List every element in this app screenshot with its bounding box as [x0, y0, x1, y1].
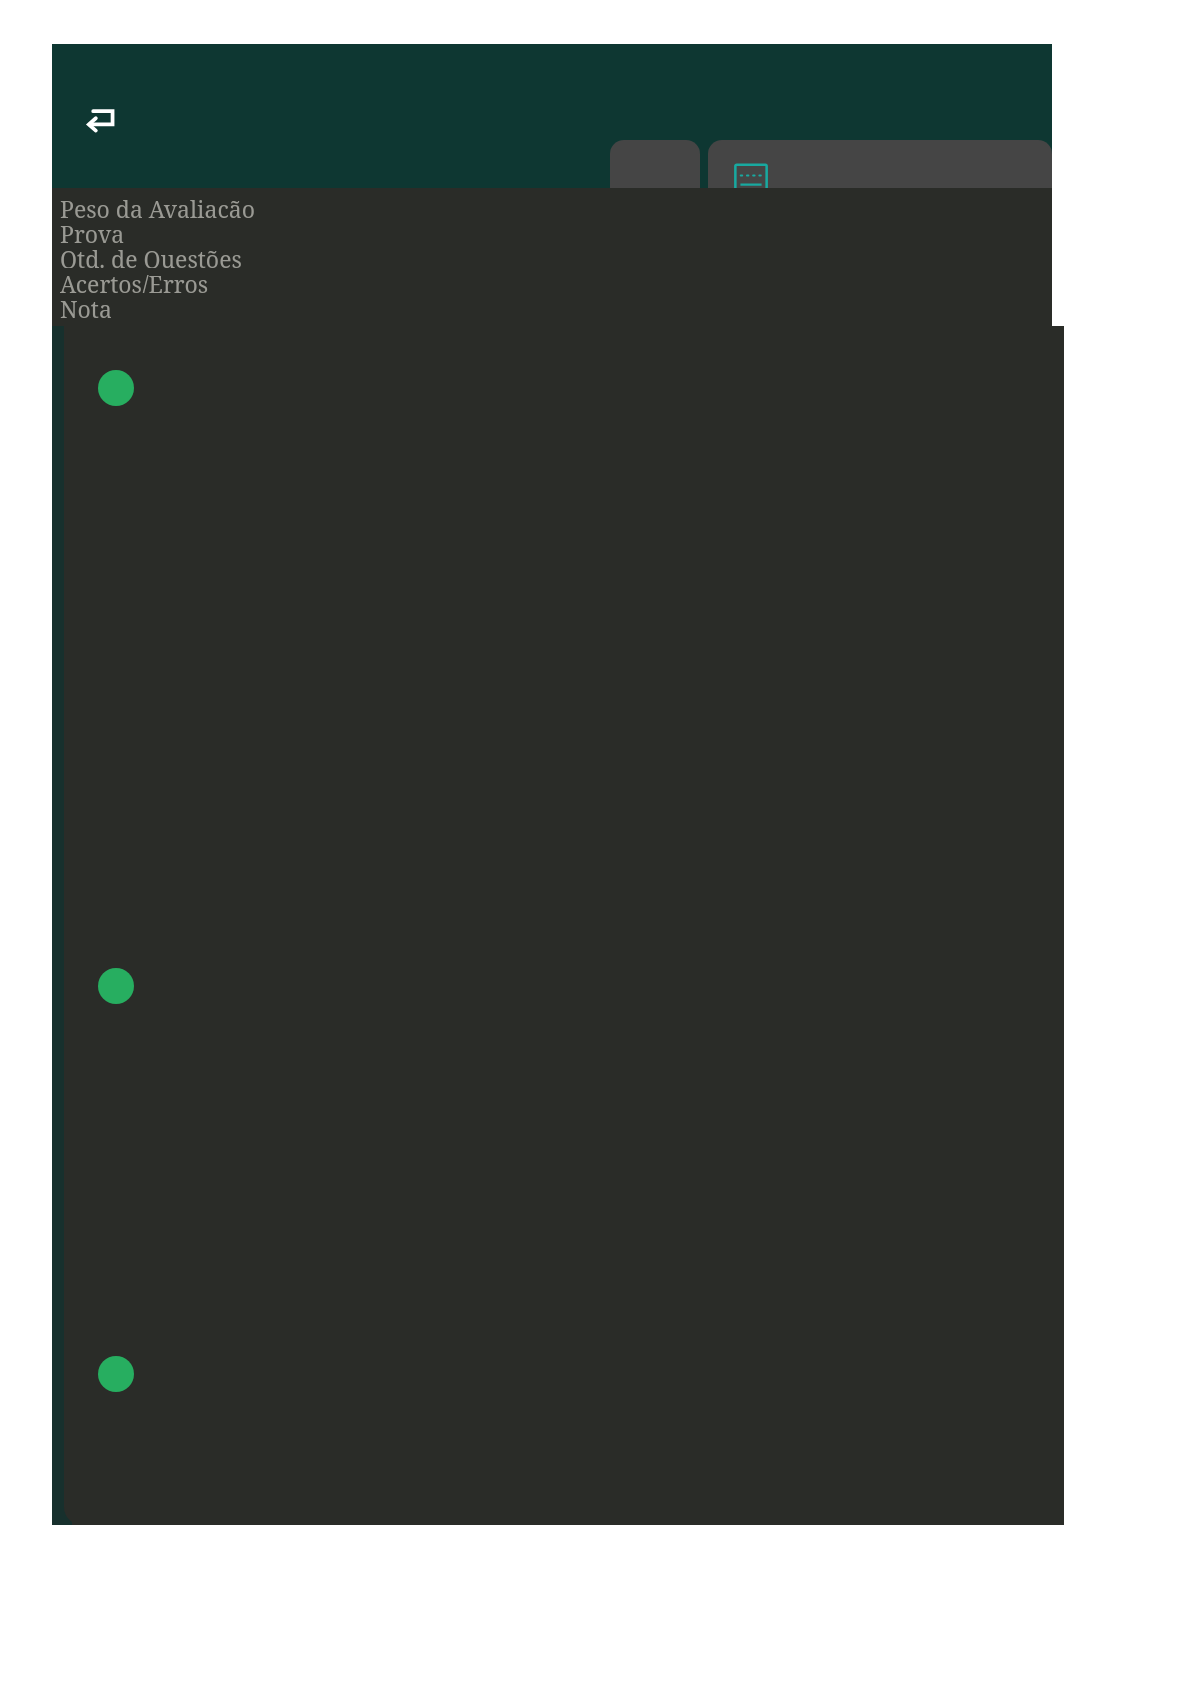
button[interactable] [64, 361, 1064, 481]
staticText: Peso da Avaliação [60, 193, 255, 218]
staticText: Qtd. de Questões [60, 243, 242, 268]
staticText: Acertos/Erros [60, 268, 209, 293]
staticText: Prova [60, 218, 125, 243]
button[interactable]: Tab [610, 140, 700, 232]
button[interactable]: Back [74, 92, 130, 148]
button[interactable] [64, 1347, 1064, 1467]
staticText: Nota [60, 293, 112, 318]
button[interactable]: Nota [52, 293, 1052, 318]
button[interactable] [64, 959, 1064, 1079]
button[interactable]: Prova [708, 140, 1052, 232]
button[interactable]: Qtd. de Questões [52, 243, 1052, 268]
button[interactable]: Acertos/Erros [52, 268, 1052, 293]
button[interactable]: Prova [52, 218, 1052, 243]
button[interactable]: Peso da Avaliação [52, 193, 1052, 218]
